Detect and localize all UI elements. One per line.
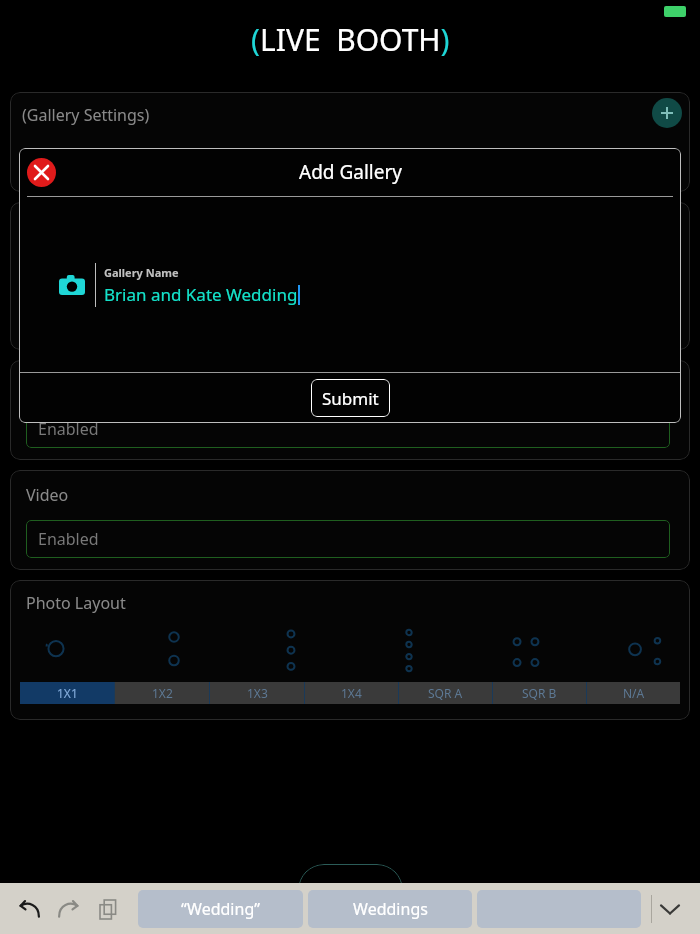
- button[interactable]: Paste: [92, 892, 126, 926]
- button[interactable]: Photo layout option: [263, 623, 319, 679]
- button[interactable]: Go Live: [298, 864, 403, 916]
- staticText: Weddings: [353, 898, 428, 920]
- button[interactable]: SQR B: [493, 682, 586, 704]
- staticText: Video: [26, 484, 69, 506]
- staticText: (Gallery Settings): [22, 104, 150, 126]
- staticText: Enabled: [38, 528, 99, 550]
- button[interactable]: Photo layout option: [28, 623, 84, 679]
- button[interactable]: Redo: [52, 892, 86, 926]
- button[interactable]: Weddings: [308, 890, 472, 928]
- button[interactable]: Photo layout option: [146, 623, 202, 679]
- staticText: 1X3: [247, 685, 268, 701]
- staticText: SQR A: [428, 685, 463, 701]
- staticText: 1X4: [341, 685, 362, 701]
- button[interactable]: Photo layout option: [381, 623, 437, 679]
- staticText: (LIVE BOOTH): [251, 19, 450, 60]
- button[interactable]: 1X3: [210, 682, 304, 704]
- staticText: Go Live: [321, 879, 380, 902]
- staticText: N/A: [623, 685, 645, 701]
- staticText: Enabled: [38, 418, 99, 440]
- button[interactable]: Photo layout option: [498, 623, 554, 679]
- button[interactable]: Submit: [311, 379, 390, 417]
- button[interactable]: N/A: [587, 682, 680, 704]
- staticText: Brian and Kate Wedding: [104, 283, 298, 306]
- staticText: Photo Layout: [26, 592, 126, 614]
- button[interactable]: Hide keyboard: [652, 891, 688, 927]
- staticText: 1X2: [152, 685, 173, 701]
- button[interactable]: 1X1: [20, 682, 114, 704]
- button[interactable]: Undo: [12, 892, 46, 926]
- button[interactable]: “Wedding”: [138, 890, 303, 928]
- button[interactable]: Enabled: [26, 410, 670, 448]
- button[interactable]: Add gallery: [652, 98, 682, 128]
- button[interactable]: Close: [27, 158, 56, 187]
- staticText: Gallery Name: [104, 265, 179, 280]
- staticText: Add Gallery: [299, 159, 402, 185]
- button[interactable]: 1X2: [115, 682, 209, 704]
- staticText: SQR B: [522, 685, 557, 701]
- button[interactable]: Enabled: [26, 520, 670, 558]
- staticText: Submit: [322, 387, 379, 410]
- button[interactable]: 1X4: [305, 682, 398, 704]
- button[interactable]: Photo layout option: [616, 623, 672, 679]
- staticText: 1X1: [57, 685, 78, 701]
- staticText: “Wedding”: [181, 898, 260, 920]
- button[interactable]: SQR A: [399, 682, 492, 704]
